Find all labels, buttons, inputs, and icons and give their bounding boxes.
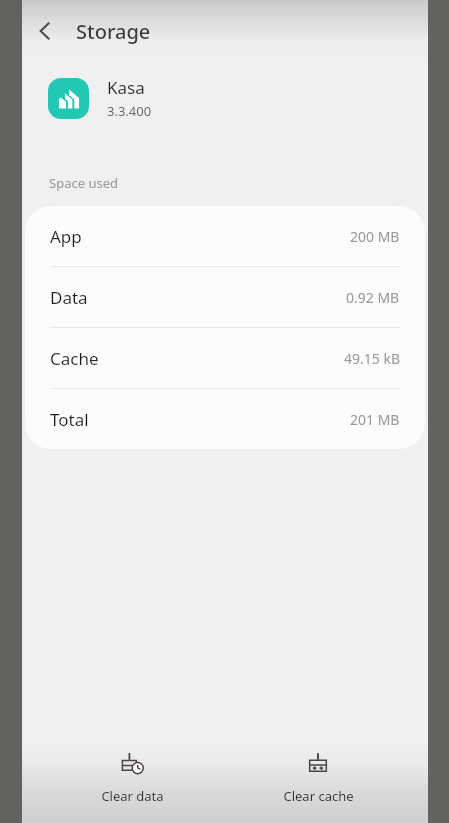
button[interactable]: Data — [25, 267, 425, 327]
staticText: Space used — [49, 174, 118, 192]
staticText: 200 MB — [350, 227, 400, 246]
staticText: Total — [50, 408, 89, 431]
button[interactable]: Cache — [25, 328, 425, 388]
other: Clear data — [119, 752, 145, 778]
button[interactable]: App — [25, 206, 425, 266]
staticText: Clear cache — [283, 787, 354, 805]
button[interactable]: Back — [22, 8, 68, 54]
staticText: Clear data — [101, 787, 164, 805]
staticText: Cache — [50, 347, 99, 370]
button[interactable]: Clear data — [57, 746, 207, 811]
staticText: Kasa — [107, 76, 145, 99]
staticText: 3.3.400 — [107, 102, 152, 120]
staticText: 49.15 kB — [344, 349, 400, 368]
other: Clear cache — [305, 752, 331, 778]
button[interactable]: Clear cache — [243, 746, 393, 811]
button[interactable]: Total — [25, 389, 425, 449]
staticText: 0.92 MB — [346, 288, 400, 307]
staticText: Storage — [76, 18, 151, 45]
staticText: 201 MB — [350, 410, 400, 429]
staticText: Data — [50, 286, 88, 309]
staticText: App — [50, 225, 82, 248]
